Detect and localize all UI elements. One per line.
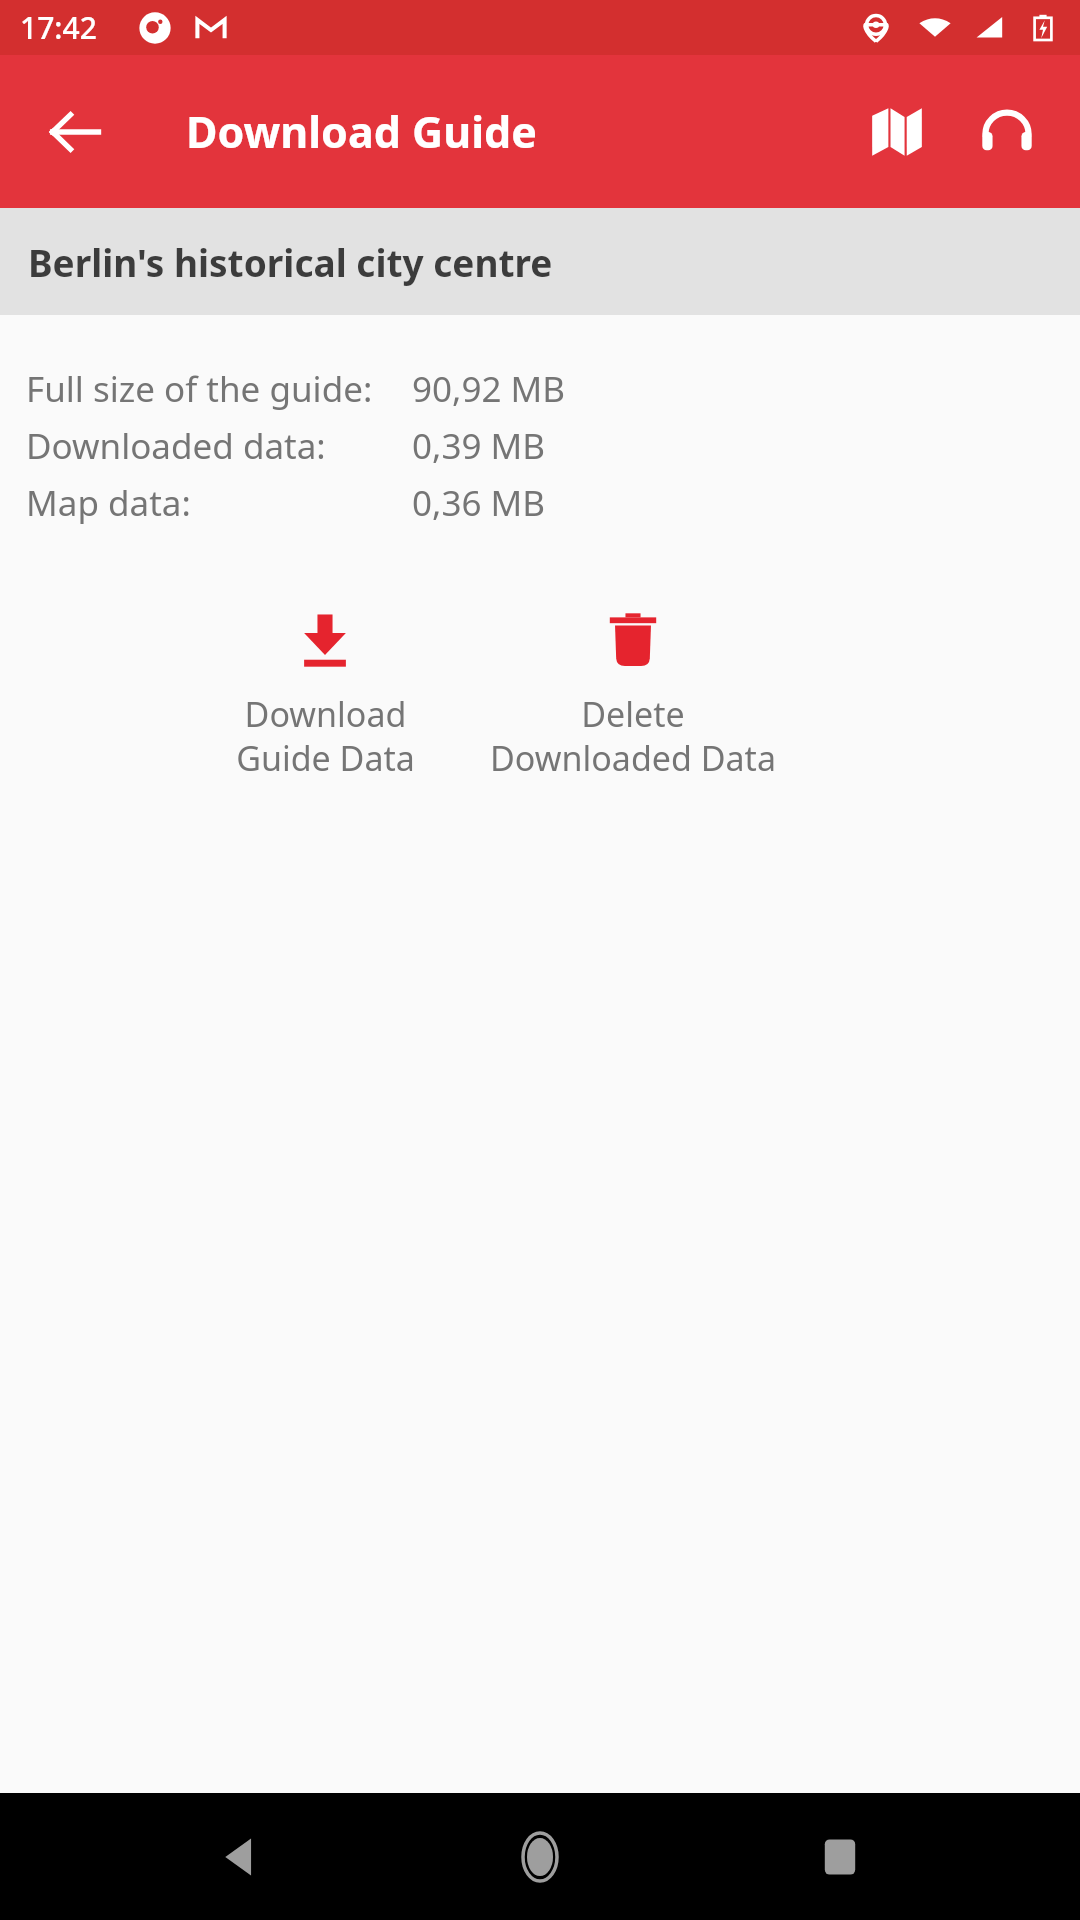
button[interactable]: Back — [180, 1797, 300, 1917]
staticText: Delete Downloaded Data — [490, 691, 776, 781]
staticText: 0,39 MB — [412, 422, 546, 470]
button[interactable]: Recent apps — [780, 1797, 900, 1917]
button[interactable]: Back — [20, 77, 130, 187]
staticText: Download Guide — [186, 102, 537, 161]
button[interactable]: Delete Downloaded Data — [468, 611, 798, 781]
staticText: Downloaded data: — [26, 422, 326, 470]
button[interactable]: Home — [480, 1797, 600, 1917]
staticText: Full size of the guide: — [26, 365, 373, 413]
button[interactable]: Audio guide — [952, 77, 1062, 187]
button[interactable]: Map — [842, 77, 952, 187]
staticText: 0,36 MB — [412, 479, 546, 527]
staticText: Berlin's historical city centre — [28, 237, 553, 287]
staticText: 90,92 MB — [412, 365, 566, 413]
staticText: Download Guide Data — [236, 691, 415, 781]
staticText: Map data: — [26, 479, 191, 527]
button[interactable]: Download Guide Data — [222, 611, 428, 781]
staticText: 17:42 — [20, 7, 97, 48]
